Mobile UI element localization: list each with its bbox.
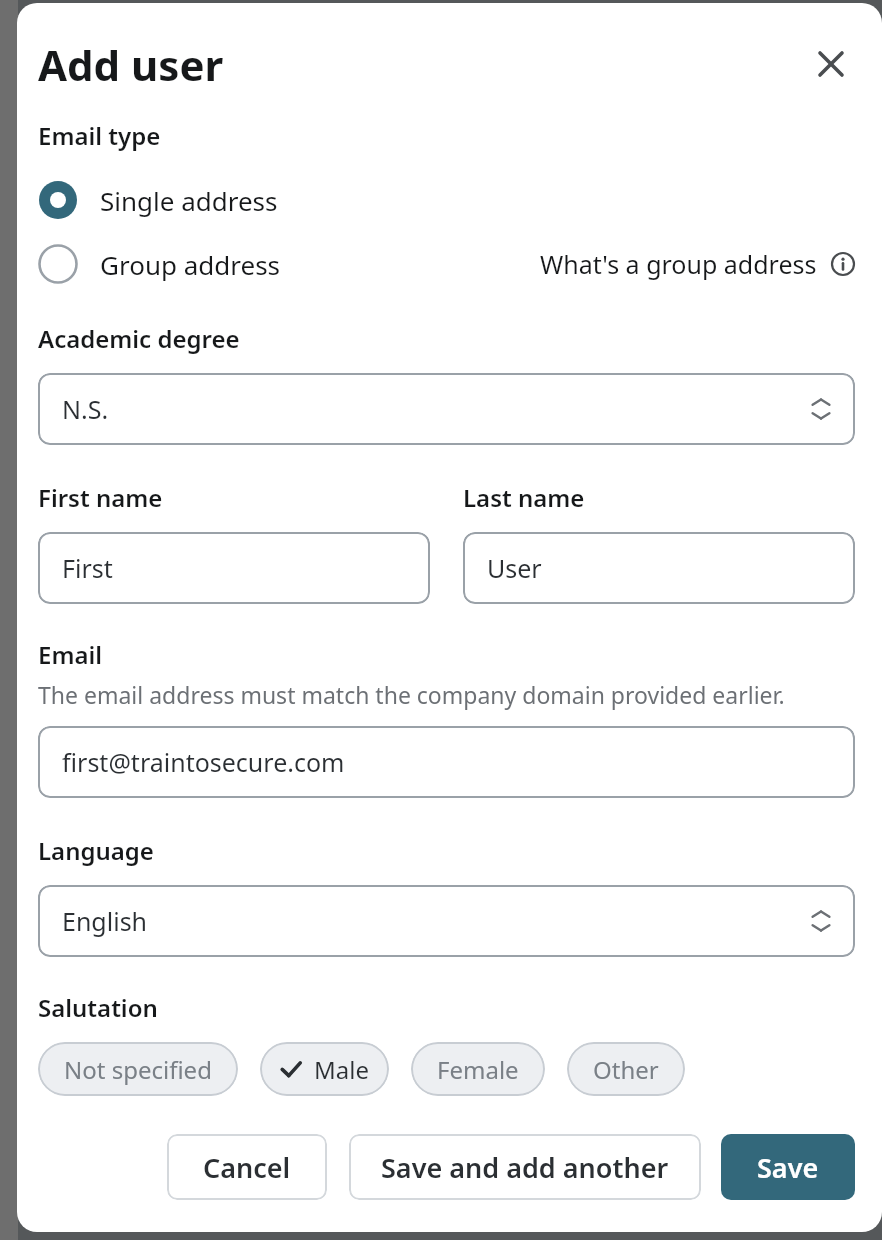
button[interactable]: Group address xyxy=(38,244,281,284)
button[interactable]: Save xyxy=(721,1134,855,1200)
staticText: Save xyxy=(757,1149,819,1186)
button[interactable]: First xyxy=(38,532,430,604)
button[interactable]: User xyxy=(463,532,855,604)
staticText: Single address xyxy=(100,183,278,218)
staticText: Salutation xyxy=(38,991,158,1024)
staticText: First name xyxy=(38,481,163,514)
staticText: Not specified xyxy=(64,1053,212,1086)
staticText: Group address xyxy=(100,247,281,282)
button[interactable]: Not specified xyxy=(38,1042,238,1096)
staticText: Cancel xyxy=(203,1149,291,1186)
button[interactable]: Male xyxy=(260,1042,389,1096)
staticText: Female xyxy=(437,1053,519,1086)
staticText: Other xyxy=(593,1053,659,1086)
staticText: First xyxy=(62,551,113,585)
staticText: Email type xyxy=(38,119,161,152)
button[interactable]: English xyxy=(38,885,855,957)
staticText: What's a group address xyxy=(540,247,817,281)
staticText: Male xyxy=(314,1053,369,1086)
button[interactable]: Single address xyxy=(38,180,278,220)
button[interactable]: Close xyxy=(807,40,855,88)
button[interactable]: Cancel xyxy=(167,1134,327,1200)
staticText: Email xyxy=(38,638,103,671)
staticText: User xyxy=(487,551,542,585)
staticText: Add user xyxy=(38,36,224,93)
button[interactable]: Save and add another xyxy=(349,1134,701,1200)
button[interactable]: N.S. xyxy=(38,373,855,445)
staticText: English xyxy=(62,904,148,938)
button[interactable]: first@traintosecure.com xyxy=(38,726,855,798)
staticText: Academic degree xyxy=(38,322,240,355)
button[interactable]: Female xyxy=(411,1042,545,1096)
staticText: The email address must match the company… xyxy=(38,679,785,710)
staticText: first@traintosecure.com xyxy=(62,745,345,779)
staticText: Language xyxy=(38,834,154,867)
staticText: N.S. xyxy=(62,392,109,426)
button[interactable]: What's a group address xyxy=(540,247,855,281)
staticText: Last name xyxy=(463,481,585,514)
button[interactable]: Other xyxy=(567,1042,685,1096)
staticText: Save and add another xyxy=(381,1149,669,1186)
